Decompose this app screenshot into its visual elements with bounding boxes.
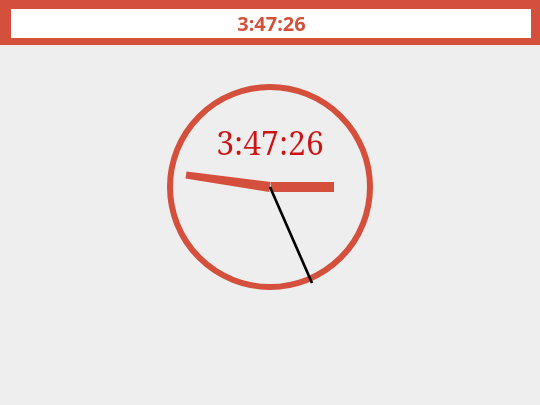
button[interactable]: 3:47:26 xyxy=(0,0,540,45)
button[interactable]: Analog clock showing 3:47:26 xyxy=(166,83,374,291)
staticText: 3:47:26 xyxy=(216,121,324,165)
staticText: 3:47:26 xyxy=(237,10,306,37)
